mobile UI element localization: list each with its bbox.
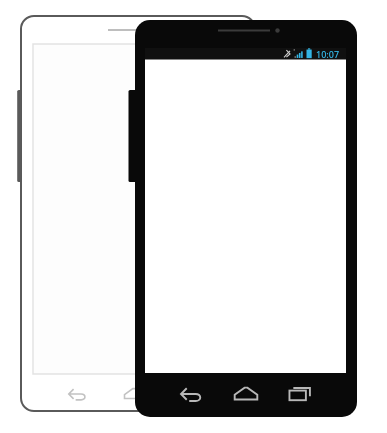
button[interactable]: Status bar [145, 48, 346, 60]
button[interactable]: Back (second device) [52, 380, 104, 408]
button[interactable]: Back [166, 380, 218, 408]
button[interactable]: Home [220, 380, 272, 408]
button[interactable]: Recent apps [274, 380, 326, 408]
button[interactable]: Home (second device) [108, 380, 142, 408]
